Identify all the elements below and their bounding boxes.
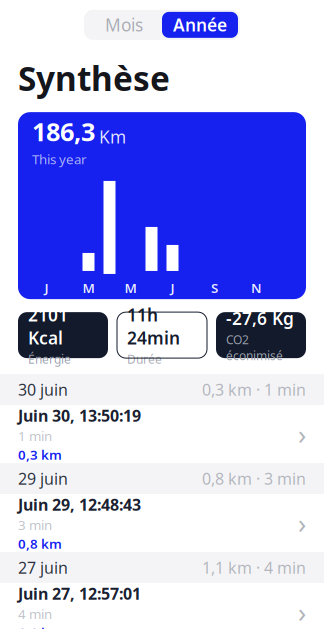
staticText: Mois xyxy=(105,13,143,36)
staticText: 2101 Kcal xyxy=(28,303,68,349)
button[interactable]: Juin 30, 13:50:19 xyxy=(0,405,324,463)
staticText: Juin 29, 12:48:43 xyxy=(18,494,141,515)
button[interactable]: Juin 27, 12:57:01 xyxy=(0,583,324,629)
staticText: › xyxy=(298,416,306,452)
staticText: Durée xyxy=(127,351,162,367)
staticText: CO2 éconimisé xyxy=(226,332,283,364)
button[interactable]: -27,6 Kg xyxy=(216,312,306,358)
staticText: 0,3 km xyxy=(18,446,62,463)
staticText: Énergie xyxy=(28,351,71,367)
staticText: 29 juin xyxy=(18,468,68,489)
staticText: › xyxy=(298,505,306,541)
staticText: Km xyxy=(99,125,126,148)
staticText: Juin 27, 12:57:01 xyxy=(18,583,141,604)
staticText: J xyxy=(44,279,48,297)
staticText: Année xyxy=(173,13,227,36)
staticText: 1,1 km · 4 min xyxy=(202,557,306,578)
staticText: 3 min xyxy=(18,516,52,534)
button[interactable]: Juin 29, 12:48:43 xyxy=(0,494,324,552)
staticText: M xyxy=(82,279,94,297)
staticText: S xyxy=(211,279,218,297)
button[interactable]: 11h 24min xyxy=(117,312,207,358)
button[interactable]: 2101 Kcal xyxy=(18,312,108,358)
staticText: Synthèse xyxy=(18,56,170,100)
staticText: N xyxy=(251,279,262,297)
staticText: 30 juin xyxy=(18,379,68,400)
button[interactable]: Année xyxy=(162,12,238,38)
staticText: 0,3 km · 1 min xyxy=(202,379,306,400)
staticText: -27,6 Kg xyxy=(226,307,294,330)
staticText: 4 min xyxy=(18,605,52,623)
staticText: J xyxy=(170,279,174,297)
button[interactable]: Mois xyxy=(86,12,162,38)
staticText: This year xyxy=(32,150,87,168)
staticText: 1 min xyxy=(18,427,52,445)
staticText: 0,8 km · 3 min xyxy=(202,468,306,489)
staticText: 186,3 xyxy=(32,115,95,148)
staticText: 11h 24min xyxy=(127,303,180,349)
staticText: Juin 30, 13:50:19 xyxy=(18,405,141,426)
staticText: 27 juin xyxy=(18,557,68,578)
staticText: 0,8 km xyxy=(18,535,62,552)
staticText: M xyxy=(124,279,136,297)
staticText: 1,1 km xyxy=(18,624,62,629)
staticText: › xyxy=(298,594,306,629)
